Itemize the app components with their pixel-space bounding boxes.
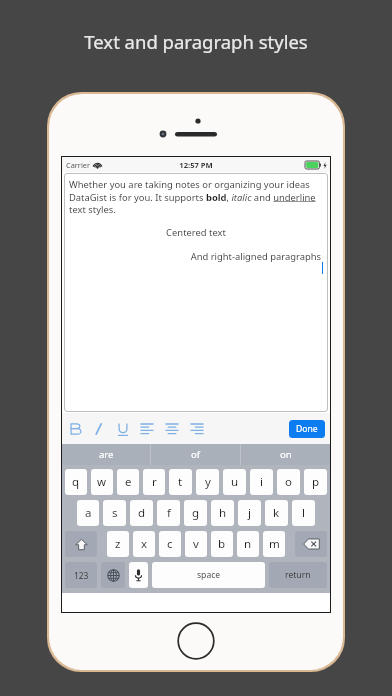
staticText: y [205,474,211,490]
button[interactable]: x [133,531,155,557]
staticText: are [99,448,114,461]
staticText: a [85,505,92,521]
staticText: v [193,536,199,552]
button[interactable]: n [237,531,259,557]
staticText: t [178,474,183,490]
button[interactable]: Underline [115,421,131,437]
button[interactable]: Align right [189,421,205,437]
staticText: g [192,505,200,521]
button[interactable]: j [238,500,261,526]
staticText: s [112,505,118,521]
button[interactable]: k [265,500,288,526]
staticText: 123 [74,570,89,581]
staticText: e [125,474,132,490]
button[interactable]: l [292,500,315,526]
button[interactable]: Switch keyboard [101,562,125,588]
button[interactable]: Align left [139,421,155,437]
button[interactable]: 123 [65,562,97,588]
staticText: p [312,474,320,490]
button[interactable]: Bold [67,421,83,437]
staticText: l [302,505,305,521]
button[interactable]: are [62,444,150,465]
staticText: n [244,536,252,552]
staticText: q [72,474,80,490]
button[interactable]: Dictate [129,562,148,588]
staticText: r [152,474,157,490]
button[interactable]: e [117,469,139,495]
staticText: b [218,536,226,552]
button[interactable]: i [250,469,273,495]
button[interactable]: p [304,469,327,495]
staticText: Centered text [69,226,323,239]
button[interactable]: h [211,500,234,526]
button[interactable]: d [130,500,153,526]
button[interactable]: Backspace [295,531,327,557]
button[interactable]: t [169,469,192,495]
staticText: f [167,505,171,521]
button[interactable]: o [277,469,300,495]
button[interactable]: c [159,531,181,557]
button[interactable]: y [196,469,219,495]
button[interactable]: a [77,500,99,526]
staticText: And right-aligned paragraphs [69,250,321,263]
staticText: Carrier [66,160,91,170]
button[interactable]: w [91,469,113,495]
button[interactable]: Done [289,420,325,438]
button[interactable]: Whether you are taking notes or organizi… [64,173,328,412]
button[interactable]: m [263,531,285,557]
button[interactable]: f [157,500,180,526]
staticText: on [280,448,292,461]
staticText: o [285,474,292,490]
staticText: z [115,536,121,552]
staticText: j [248,505,251,521]
staticText: Text and paragraph styles [0,29,392,54]
button[interactable]: r [143,469,165,495]
button[interactable]: Align center [164,421,180,437]
button[interactable]: v [185,531,207,557]
staticText: Whether you are taking notes or organizi… [69,178,323,215]
button[interactable]: g [184,500,207,526]
staticText: x [141,536,148,552]
button[interactable]: space [152,562,265,588]
button[interactable]: b [211,531,233,557]
button[interactable]: of [151,444,240,465]
staticText: space [197,569,221,581]
button[interactable]: z [107,531,129,557]
button[interactable]: q [65,469,87,495]
staticText: of [191,448,201,461]
staticText: return [285,569,311,581]
button[interactable]: u [223,469,246,495]
staticText: c [167,536,173,552]
button[interactable]: s [103,500,126,526]
staticText: h [219,505,227,521]
staticText: 12:57 PM [179,160,213,170]
button[interactable]: on [241,444,330,465]
staticText: Done [296,423,318,435]
staticText: w [97,474,107,490]
button[interactable]: return [269,562,327,588]
staticText: i [260,474,263,490]
staticText: m [269,536,280,552]
button[interactable]: Shift [65,531,97,557]
staticText: d [138,505,146,521]
button[interactable]: Italic [91,421,107,437]
staticText: k [273,505,280,521]
staticText: u [231,474,239,490]
